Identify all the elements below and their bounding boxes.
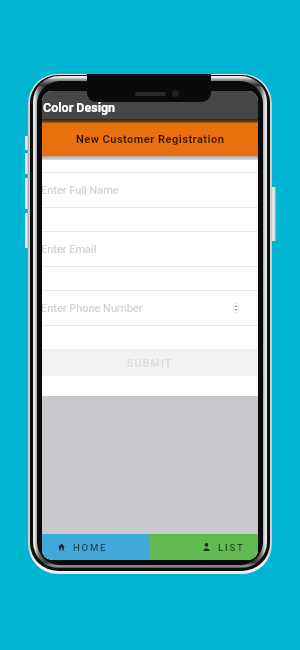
button[interactable]: Enter Email: [42, 232, 258, 266]
staticText: HOME: [73, 542, 108, 553]
staticText: New Customer Registration: [76, 133, 225, 146]
button[interactable]: Enter Full Name: [42, 173, 258, 207]
staticText: Enter Phone Number: [42, 302, 143, 315]
button[interactable]: LIST: [150, 534, 258, 560]
button[interactable]: New Customer Registration: [42, 123, 258, 156]
staticText: Enter Email: [42, 243, 97, 256]
button[interactable]: SUBMIT: [42, 349, 258, 376]
staticText: SUBMIT: [127, 357, 173, 369]
button[interactable]: Enter Phone Number: [42, 291, 258, 325]
staticText: LIST: [218, 542, 245, 553]
staticText: Color Design: [43, 100, 116, 115]
button[interactable]: HOME: [42, 534, 150, 560]
staticText: Enter Full Name: [42, 184, 119, 197]
